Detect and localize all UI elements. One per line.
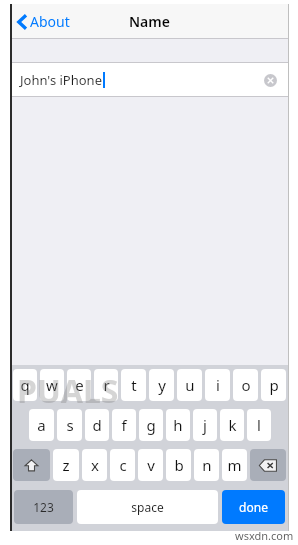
button[interactable]: Shift (13, 449, 50, 481)
staticText: i (216, 375, 220, 395)
button[interactable]: y (149, 369, 174, 401)
button[interactable]: p (261, 369, 286, 401)
staticText: John's iPhone (20, 71, 102, 89)
staticText: y (158, 375, 166, 395)
staticText: t (131, 375, 137, 395)
staticText: k (228, 415, 237, 435)
button[interactable]: d (85, 409, 109, 441)
staticText: j (203, 415, 207, 435)
staticText: h (173, 415, 183, 435)
button[interactable]: x (82, 449, 107, 481)
staticText: c (119, 455, 127, 475)
staticText: z (62, 455, 70, 475)
staticText: About (30, 12, 70, 31)
staticText: e (75, 375, 84, 395)
button[interactable]: 123 (14, 490, 73, 524)
button[interactable]: f (112, 409, 136, 441)
staticText: d (92, 415, 102, 435)
staticText: p (269, 375, 279, 395)
staticText: PUALS (17, 369, 119, 413)
button[interactable]: b (166, 449, 191, 481)
button[interactable]: i (205, 369, 230, 401)
button[interactable]: Backspace (250, 449, 286, 481)
button[interactable]: John's iPhone (11, 63, 288, 96)
staticText: b (174, 455, 184, 475)
staticText: x (91, 455, 99, 475)
button[interactable]: space (77, 490, 218, 524)
button[interactable]: o (233, 369, 258, 401)
staticText: space (131, 499, 164, 515)
staticText: m (227, 455, 242, 475)
staticText: Name (129, 12, 170, 31)
button[interactable]: e (67, 369, 91, 401)
button[interactable]: s (57, 409, 82, 441)
staticText: f (121, 415, 127, 435)
staticText: l (257, 415, 261, 435)
staticText: r (103, 375, 110, 395)
button[interactable]: n (194, 449, 219, 481)
staticText: wsxdn.com (235, 528, 294, 543)
button[interactable]: q (13, 369, 37, 401)
staticText: q (20, 375, 30, 395)
button[interactable]: t (121, 369, 146, 401)
staticText: done (239, 499, 268, 515)
staticText: v (147, 455, 155, 475)
staticText: n (202, 455, 212, 475)
button[interactable]: v (138, 449, 163, 481)
button[interactable]: u (177, 369, 202, 401)
button[interactable]: k (220, 409, 244, 441)
button[interactable]: a (29, 409, 54, 441)
staticText: s (66, 415, 74, 435)
button[interactable]: c (110, 449, 135, 481)
button[interactable]: done (222, 490, 285, 524)
button[interactable]: Clear text (261, 71, 279, 89)
staticText: w (46, 375, 58, 395)
staticText: o (241, 375, 251, 395)
button[interactable]: j (193, 409, 217, 441)
button[interactable]: m (222, 449, 247, 481)
button[interactable]: z (53, 449, 79, 481)
button[interactable]: h (166, 409, 190, 441)
button[interactable]: w (40, 369, 64, 401)
staticText: 123 (33, 499, 54, 515)
button[interactable]: About (17, 12, 70, 31)
button[interactable]: l (247, 409, 271, 441)
staticText: a (37, 415, 46, 435)
button[interactable]: r (94, 369, 118, 401)
staticText: u (185, 375, 195, 395)
staticText: g (146, 415, 156, 435)
button[interactable]: g (139, 409, 163, 441)
